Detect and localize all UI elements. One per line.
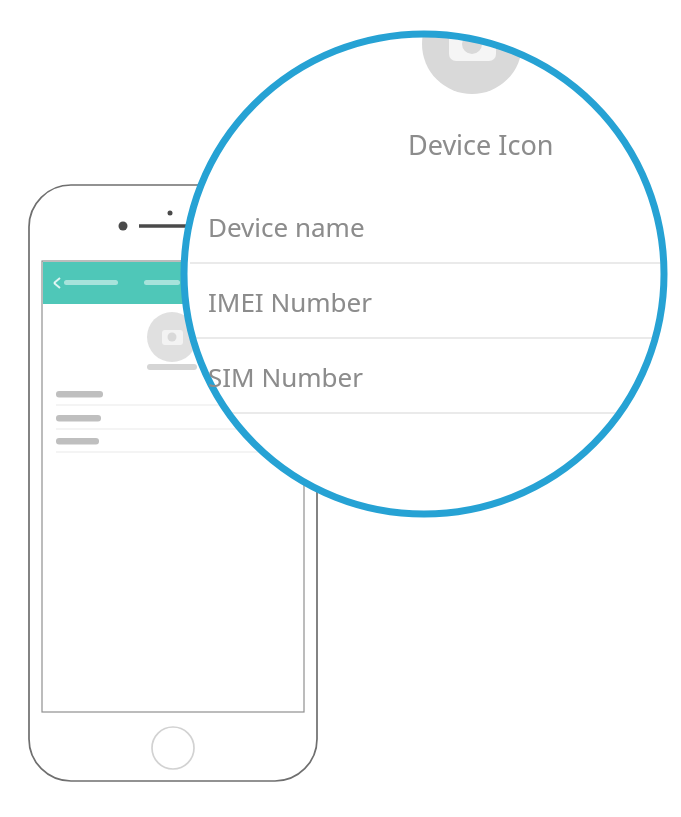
staticText: IMEI Number	[208, 284, 372, 319]
button[interactable]: IMEI Number	[190, 264, 665, 338]
staticText: Device Icon	[408, 126, 554, 163]
button[interactable]: Device name	[190, 189, 665, 263]
staticText: SIM Number	[208, 359, 363, 394]
staticText: Device name	[208, 209, 365, 244]
button[interactable]: SIM Number	[190, 339, 665, 413]
